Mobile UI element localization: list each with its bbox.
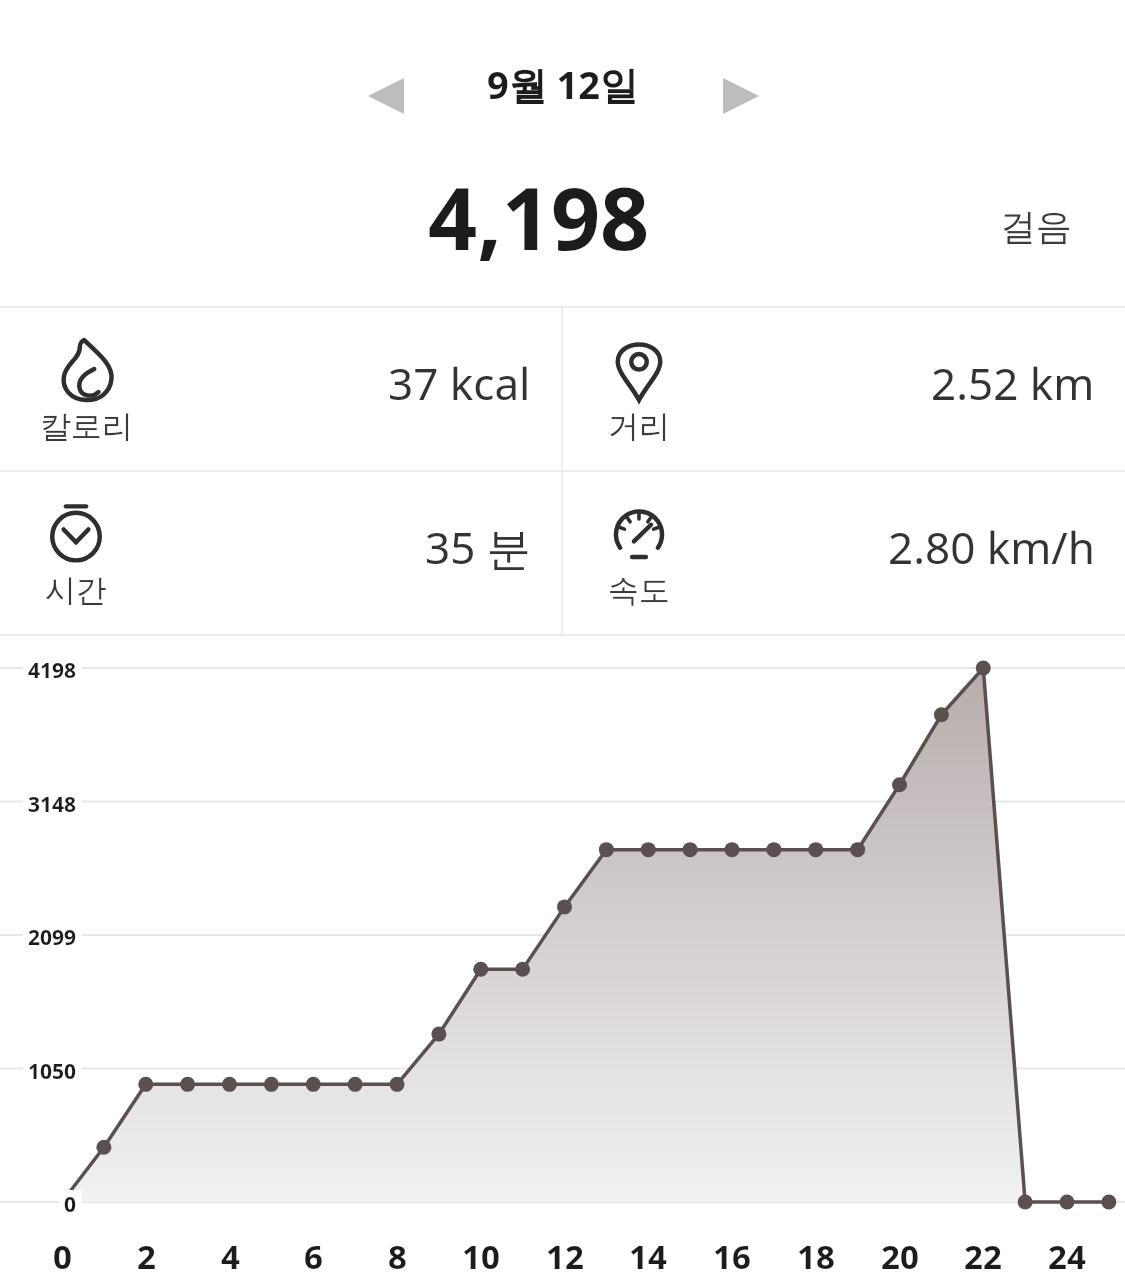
staticText: 거리 [608, 407, 670, 446]
button[interactable]: 9월 12일 [487, 58, 639, 110]
staticText: 37 kcal [388, 353, 531, 413]
staticText: 속도 [608, 571, 670, 610]
staticText: 18 [797, 1234, 835, 1279]
button[interactable]: 시간 [0, 472, 561, 634]
staticText: 4,198 [428, 158, 650, 275]
staticText: 4 [221, 1234, 240, 1279]
staticText: 12 [546, 1234, 584, 1279]
staticText: 20 [881, 1234, 919, 1279]
staticText: 걸음 [1000, 204, 1072, 249]
button[interactable]: 속도 [563, 472, 1125, 634]
button[interactable]: 거리 [563, 308, 1125, 470]
staticText: 24 [1048, 1234, 1086, 1279]
staticText: 0 [53, 1234, 72, 1279]
staticText: 9월 12일 [487, 58, 639, 110]
staticText: 10 [462, 1234, 500, 1279]
staticText: 2 [137, 1234, 156, 1279]
staticText: 2.52 km [931, 353, 1095, 413]
staticText: 3148 [28, 790, 77, 819]
button[interactable]: Next day [705, 60, 777, 132]
staticText: 1050 [28, 1057, 77, 1086]
staticText: 22 [964, 1234, 1002, 1279]
staticText: 6 [304, 1234, 323, 1279]
staticText: 시간 [45, 571, 107, 610]
button[interactable]: 칼로리 [0, 308, 561, 470]
staticText: 14 [629, 1234, 667, 1279]
staticText: 칼로리 [40, 407, 133, 446]
staticText: 4198 [28, 656, 77, 685]
staticText: 2.80 km/h [888, 517, 1095, 577]
staticText: 8 [388, 1234, 407, 1279]
staticText: 2099 [28, 923, 77, 952]
staticText: 0 [64, 1190, 77, 1219]
staticText: 16 [713, 1234, 751, 1279]
staticText: 35 분 [425, 517, 531, 577]
button[interactable]: Previous day [350, 60, 422, 132]
